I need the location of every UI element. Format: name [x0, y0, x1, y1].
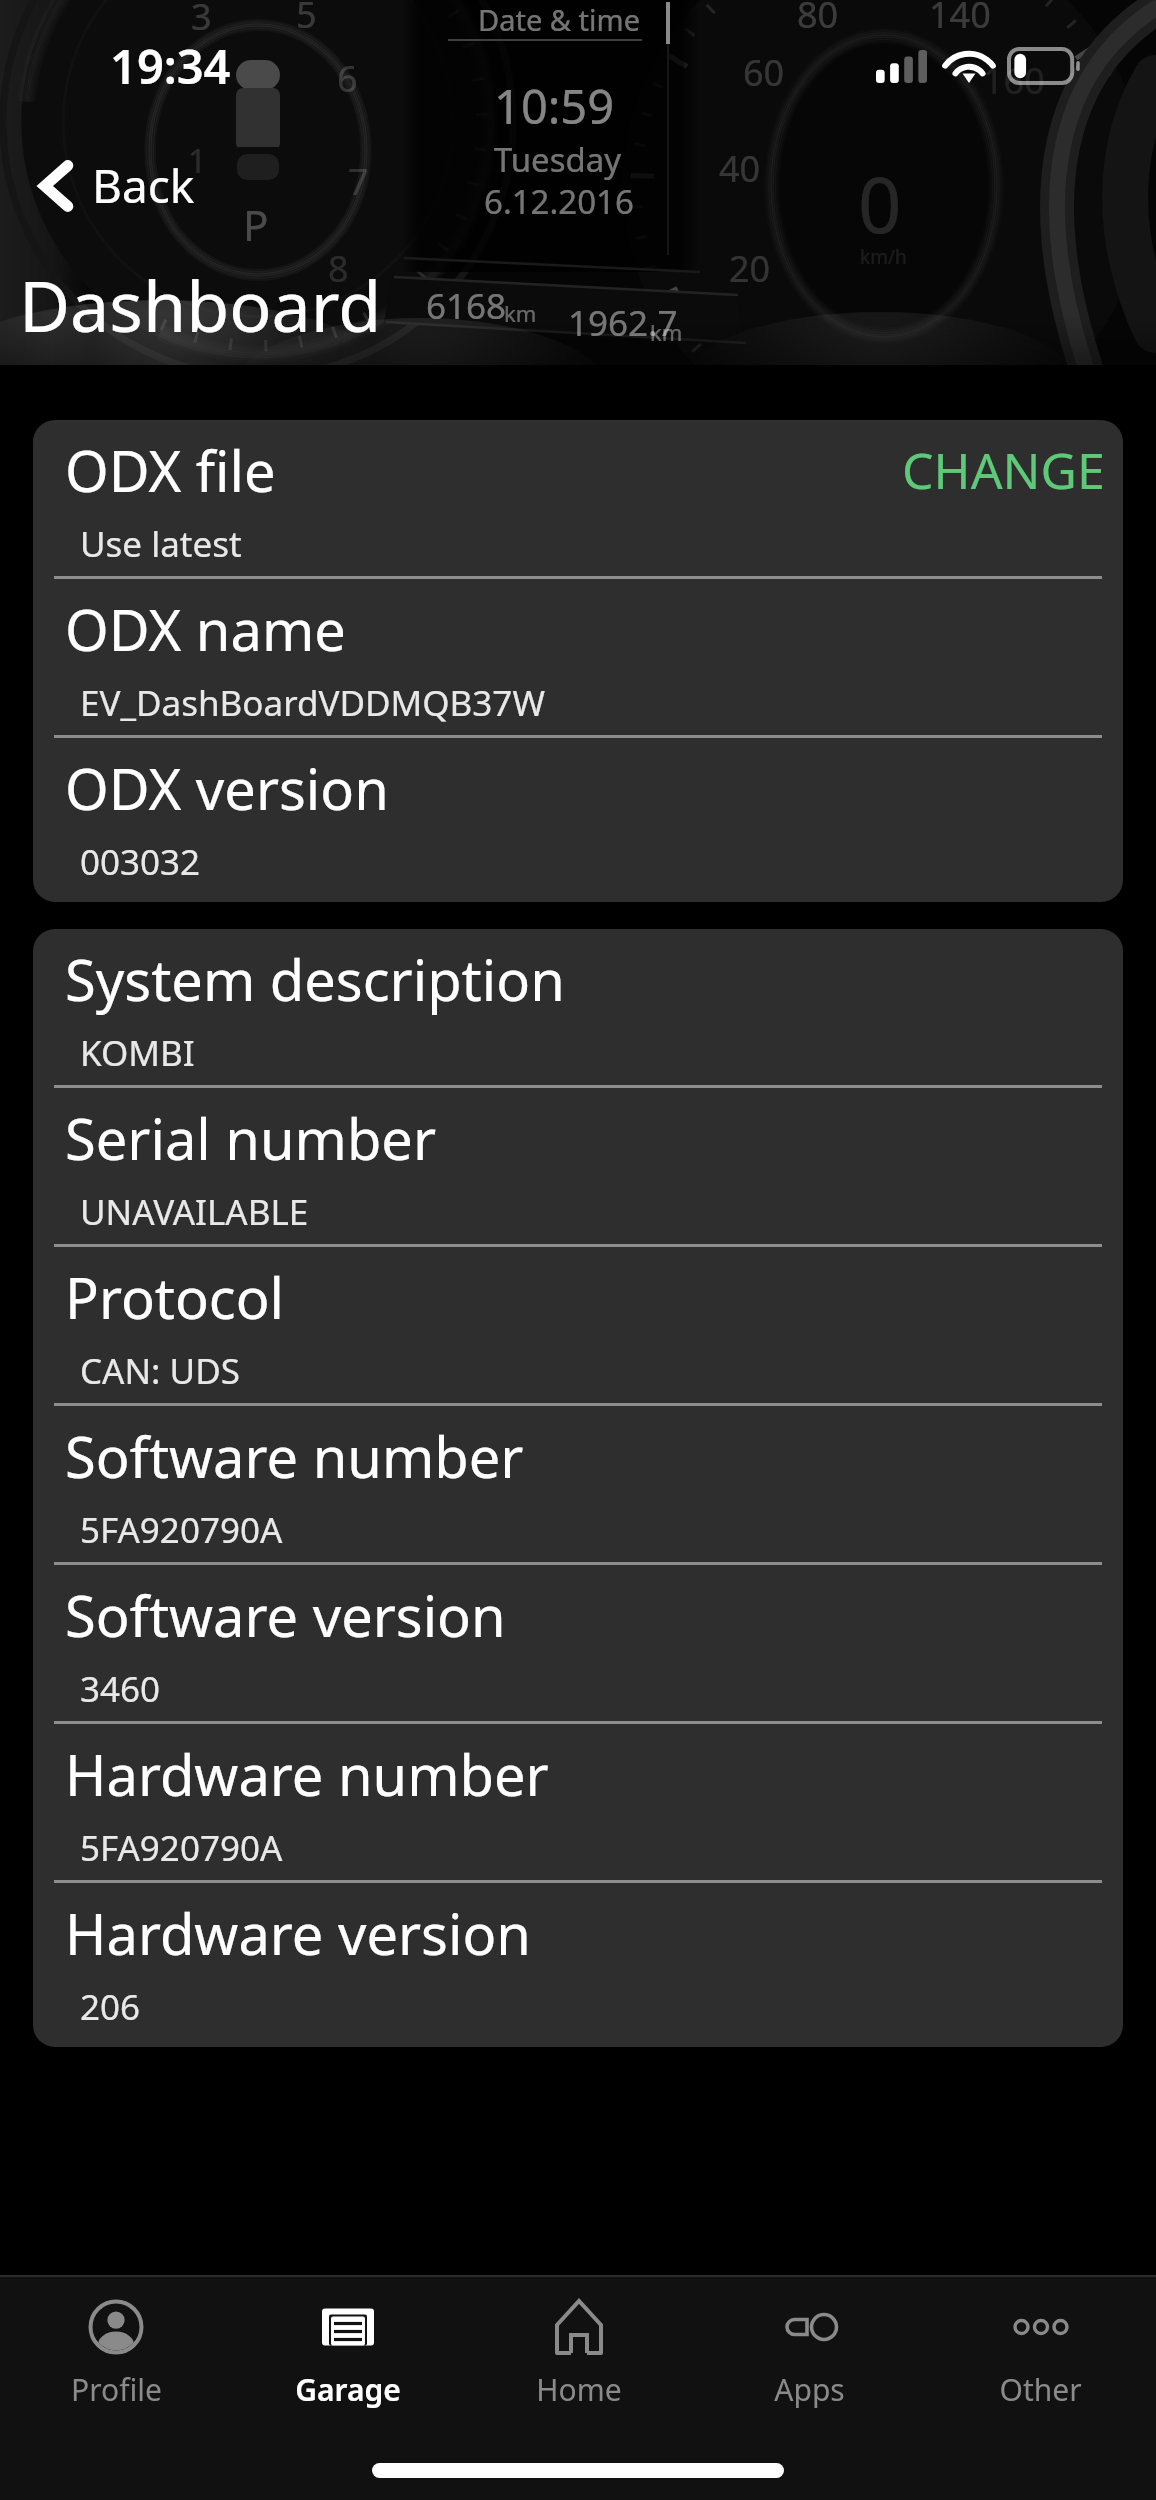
- staticText: 3460: [80, 1665, 161, 1713]
- staticText: Profile: [71, 2369, 162, 2410]
- staticText: 160: [983, 56, 1045, 105]
- staticText: 20: [729, 244, 771, 293]
- button[interactable]: ODX file: [33, 420, 1123, 579]
- staticText: 140: [929, 0, 991, 39]
- staticText: System description: [65, 941, 565, 1017]
- staticText: Hardware number: [65, 1736, 549, 1812]
- staticText: 10:59: [494, 74, 615, 138]
- staticText: 8: [328, 244, 349, 293]
- button[interactable]: Other: [925, 2277, 1156, 2410]
- staticText: Protocol: [65, 1259, 285, 1335]
- staticText: 5FA920790A: [80, 1824, 283, 1872]
- button[interactable]: Hardware version: [33, 1883, 1123, 2047]
- staticText: P: [243, 196, 269, 253]
- staticText: 1: [188, 139, 207, 183]
- staticText: 40: [719, 144, 761, 193]
- staticText: Software number: [65, 1418, 524, 1494]
- staticText: Tuesday: [494, 137, 622, 182]
- staticText: 6168: [426, 282, 507, 330]
- button[interactable]: Serial number: [33, 1088, 1123, 1247]
- staticText: 1962.7: [568, 299, 678, 347]
- staticText: 003032: [80, 838, 201, 886]
- staticText: CHANGE: [902, 436, 1105, 504]
- staticText: Home: [536, 2369, 622, 2410]
- staticText: km: [650, 317, 683, 347]
- staticText: 19:34: [110, 34, 231, 98]
- staticText: 60: [743, 48, 785, 97]
- staticText: Date & time: [478, 0, 640, 39]
- staticText: CAN: UDS: [80, 1347, 240, 1395]
- button[interactable]: Apps: [694, 2277, 925, 2410]
- staticText: km: [504, 298, 537, 328]
- button[interactable]: Garage: [232, 2277, 463, 2410]
- button[interactable]: Protocol: [33, 1247, 1123, 1406]
- button[interactable]: Back: [27, 150, 209, 221]
- staticText: 6.12.2016: [484, 179, 634, 224]
- staticText: ODX name: [65, 591, 346, 667]
- staticText: Hardware version: [65, 1895, 531, 1971]
- staticText: 6: [337, 54, 358, 103]
- staticText: Use latest: [80, 520, 242, 568]
- staticText: Dashboard: [19, 257, 382, 352]
- staticText: Other: [999, 2369, 1082, 2410]
- staticText: UNAVAILABLE: [80, 1188, 309, 1236]
- staticText: Serial number: [65, 1100, 437, 1176]
- button[interactable]: ODX version: [33, 738, 1123, 902]
- button[interactable]: ODX name: [33, 579, 1123, 738]
- staticText: Apps: [774, 2369, 845, 2410]
- staticText: 206: [80, 1983, 141, 2031]
- staticText: 7: [348, 157, 369, 206]
- other: Back: [27, 155, 75, 217]
- staticText: 5FA920790A: [80, 1506, 283, 1554]
- staticText: Garage: [295, 2369, 401, 2410]
- button[interactable]: CHANGE: [894, 434, 1105, 506]
- button[interactable]: Home: [463, 2277, 694, 2410]
- button[interactable]: Hardware number: [33, 1724, 1123, 1883]
- staticText: ODX file: [65, 432, 276, 508]
- staticText: 0: [858, 152, 902, 256]
- staticText: 3: [191, 0, 212, 41]
- staticText: Software version: [65, 1577, 506, 1653]
- button[interactable]: Profile: [0, 2277, 232, 2410]
- staticText: km/h: [860, 244, 907, 270]
- staticText: KOMBI: [80, 1029, 195, 1077]
- staticText: 5: [296, 0, 317, 39]
- button[interactable]: Software number: [33, 1406, 1123, 1565]
- staticText: 80: [797, 0, 839, 39]
- staticText: ODX version: [65, 750, 389, 826]
- staticText: EV_DashBoardVDDMQB37W: [80, 679, 545, 727]
- button[interactable]: System description: [33, 929, 1123, 1088]
- staticText: Back: [92, 154, 195, 217]
- button[interactable]: Software version: [33, 1565, 1123, 1724]
